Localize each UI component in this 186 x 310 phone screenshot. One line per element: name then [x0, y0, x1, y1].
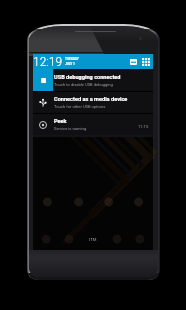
staticText: ITM [89, 237, 97, 242]
staticText: TUESDAY [65, 57, 79, 61]
button[interactable]: Battery [128, 56, 139, 67]
button[interactable]: Peek [33, 114, 153, 135]
staticText: Connected as a media device [54, 96, 128, 103]
button[interactable]: USB debugging connected [33, 69, 153, 91]
staticText: 11:15 [138, 124, 149, 129]
staticText: Touch for other USB options [54, 104, 106, 109]
staticText: Touch to disable USB debugging [54, 82, 113, 87]
staticText: Service is running [54, 126, 87, 131]
staticText: 12:19 [33, 55, 63, 69]
button[interactable]: Connected as a media device [33, 92, 153, 113]
staticText: JULY 1 [65, 62, 75, 66]
staticText: USB debugging connected [54, 74, 121, 81]
staticText: Peek [54, 118, 67, 125]
button[interactable]: Quick settings [140, 56, 151, 67]
